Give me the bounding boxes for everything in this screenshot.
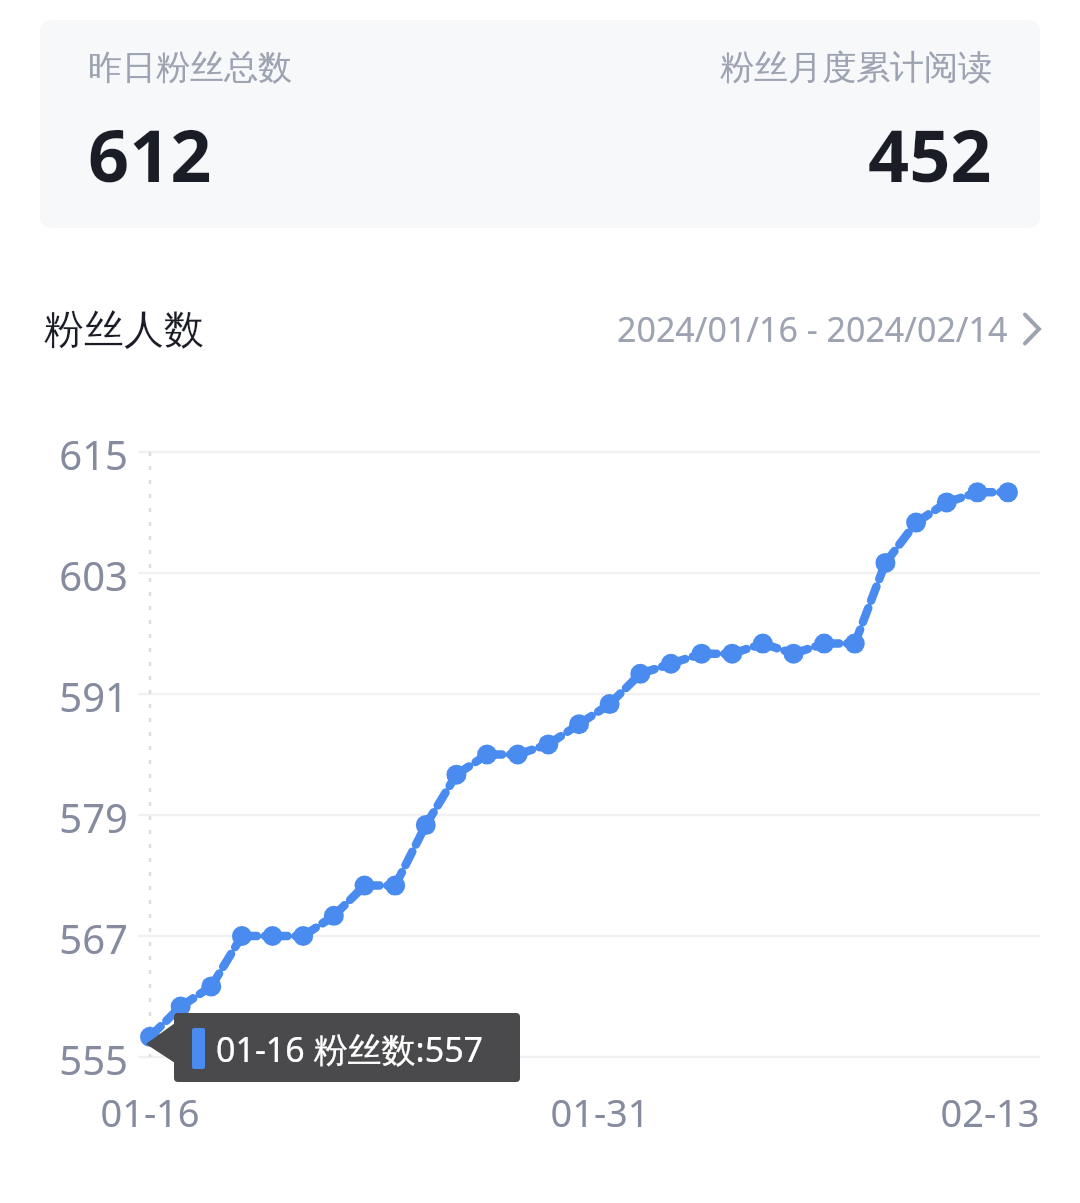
staticText: 452 [868,105,992,203]
button[interactable]: 选择日期范围 [617,300,1042,358]
staticText: 粉丝月度累计阅读 [720,46,992,89]
staticText: 粉丝人数 [44,304,204,354]
staticText: 555 [0,1032,128,1086]
staticText: 615 [0,427,128,481]
staticText: 603 [0,548,128,602]
button[interactable]: 粉丝月度累计阅读 [540,20,1040,228]
staticText: 612 [88,105,212,203]
staticText: 01-16 粉丝数:557 [216,1026,484,1072]
staticText: 01-31 [520,1086,680,1138]
staticText: 昨日粉丝总数 [88,46,292,89]
staticText: 02-13 [910,1086,1070,1138]
staticText: 01-16 [70,1086,230,1138]
staticText: 2024/01/16 - 2024/02/14 [617,306,1008,352]
staticText: 567 [0,911,128,965]
staticText: 579 [0,790,128,844]
button[interactable]: 昨日粉丝总数 [40,20,540,228]
staticText: 591 [0,669,128,723]
